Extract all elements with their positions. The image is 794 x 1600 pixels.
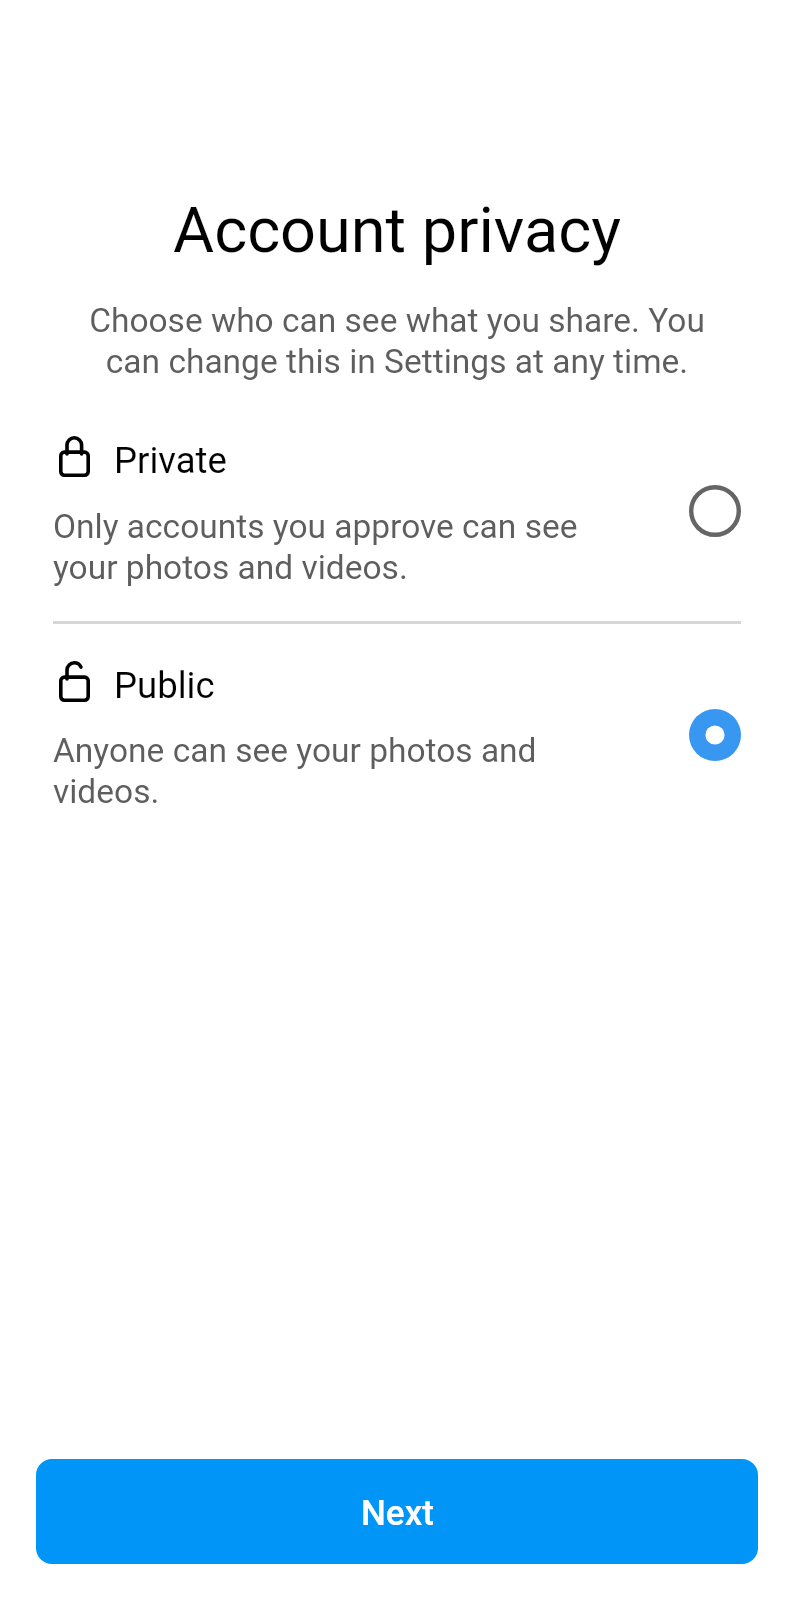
button[interactable]: Next — [36, 1459, 758, 1564]
staticText: Account privacy — [0, 194, 794, 268]
button[interactable]: Private account — [0, 420, 794, 620]
button[interactable]: Public account — [0, 626, 794, 826]
staticText: Anyone can see your photos and videos. — [53, 731, 537, 812]
staticText: Next — [361, 1493, 434, 1534]
staticText: Private — [114, 439, 227, 482]
other: Public account — [59, 661, 90, 702]
other: Private account — [59, 436, 90, 477]
button[interactable]: Select Public — [689, 709, 741, 761]
staticText: Only accounts you approve can see your p… — [53, 507, 578, 588]
button[interactable]: Select Private — [689, 485, 741, 537]
staticText: Public — [114, 664, 215, 707]
staticText: Choose who can see what you share. You c… — [0, 301, 794, 382]
